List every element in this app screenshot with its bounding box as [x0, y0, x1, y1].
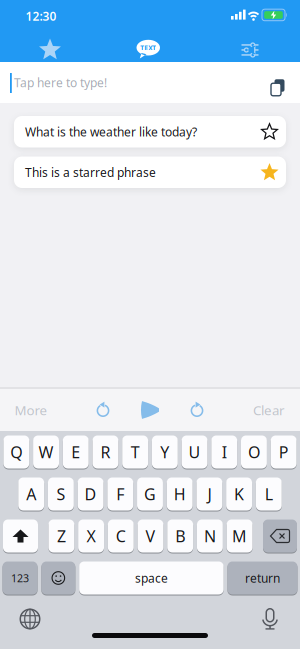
button[interactable]: N	[197, 519, 223, 553]
button[interactable]: space	[79, 561, 224, 595]
staticText: F	[116, 483, 124, 505]
staticText: O	[248, 441, 260, 463]
staticText: What is the weather like today?	[25, 124, 197, 140]
staticText: 123	[11, 571, 29, 585]
staticText: space	[135, 570, 168, 586]
staticText: return	[245, 570, 280, 586]
button[interactable]: This is a starred phrase	[14, 156, 286, 188]
button[interactable]: return	[227, 561, 297, 595]
button[interactable]: H	[167, 477, 193, 511]
button[interactable]: 123	[3, 561, 38, 595]
staticText: G	[144, 483, 156, 505]
button[interactable]: Dictate	[248, 599, 292, 639]
button[interactable]: F	[107, 477, 133, 511]
button[interactable]: What is the weather like today?	[14, 116, 286, 147]
button[interactable]: S	[48, 477, 74, 511]
button[interactable]: Shift	[3, 519, 38, 553]
button[interactable]: Text entry field	[0, 62, 252, 103]
staticText: X	[87, 525, 96, 547]
button[interactable]: W	[33, 435, 59, 469]
staticText: Y	[160, 441, 169, 463]
button[interactable]: R	[92, 435, 118, 469]
staticText: TEXT	[140, 43, 156, 52]
button[interactable]: D	[78, 477, 104, 511]
button[interactable]: Starred phrases	[0, 24, 100, 62]
button[interactable]: Z	[48, 519, 74, 553]
staticText: Z	[57, 525, 66, 547]
button[interactable]: A	[18, 477, 44, 511]
button[interactable]: V	[137, 519, 163, 553]
staticText: H	[174, 483, 186, 505]
staticText: Tap here to type!	[14, 74, 107, 90]
button[interactable]: B	[167, 519, 193, 553]
button[interactable]: I	[211, 435, 237, 469]
button[interactable]: J	[196, 477, 222, 511]
staticText: 12:30	[25, 8, 56, 24]
button[interactable]: X	[78, 519, 104, 553]
staticText: This is a starred phrase	[25, 164, 156, 180]
staticText: W	[39, 441, 54, 463]
button[interactable]: E	[63, 435, 89, 469]
staticText: P	[279, 441, 289, 463]
button[interactable]: Redo	[177, 388, 217, 432]
button[interactable]: O	[241, 435, 267, 469]
button[interactable]: U	[182, 435, 207, 469]
staticText: C	[116, 525, 126, 547]
staticText: E	[71, 441, 80, 463]
staticText: U	[188, 441, 200, 463]
button[interactable]: P	[271, 435, 297, 469]
button[interactable]: K	[226, 477, 252, 511]
button[interactable]: L	[256, 477, 282, 511]
button[interactable]: M	[227, 519, 252, 553]
staticText: K	[234, 483, 244, 505]
staticText: L	[265, 483, 273, 505]
button[interactable]: Emoji	[41, 561, 75, 595]
button[interactable]: Y	[152, 435, 178, 469]
staticText: V	[145, 525, 155, 547]
staticText: A	[26, 483, 36, 505]
staticText: I	[222, 441, 227, 463]
button[interactable]: Undo	[83, 388, 123, 432]
staticText: Q	[10, 441, 22, 463]
staticText: B	[175, 525, 185, 547]
staticText: D	[85, 483, 97, 505]
button[interactable]: Next keyboard	[8, 599, 52, 639]
button[interactable]: Clear	[241, 388, 297, 432]
staticText: More	[14, 401, 47, 419]
button[interactable]: Settings	[200, 24, 300, 62]
button[interactable]: G	[137, 477, 163, 511]
button[interactable]: Speak	[128, 388, 172, 432]
staticText: R	[100, 441, 110, 463]
button[interactable]: Paste	[253, 63, 293, 104]
button[interactable]: T	[122, 435, 148, 469]
staticText: T	[131, 441, 140, 463]
button[interactable]: Delete	[263, 519, 297, 553]
staticText: N	[204, 525, 216, 547]
button[interactable]: C	[108, 519, 134, 553]
button[interactable]: Q	[3, 435, 29, 469]
button[interactable]: Text	[100, 24, 200, 62]
button[interactable]: More	[3, 388, 59, 432]
staticText: S	[56, 483, 65, 505]
staticText: M	[232, 525, 247, 547]
staticText: J	[207, 483, 211, 505]
staticText: Clear	[253, 401, 285, 419]
